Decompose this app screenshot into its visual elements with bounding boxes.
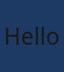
staticText: Hello — [4, 21, 60, 51]
